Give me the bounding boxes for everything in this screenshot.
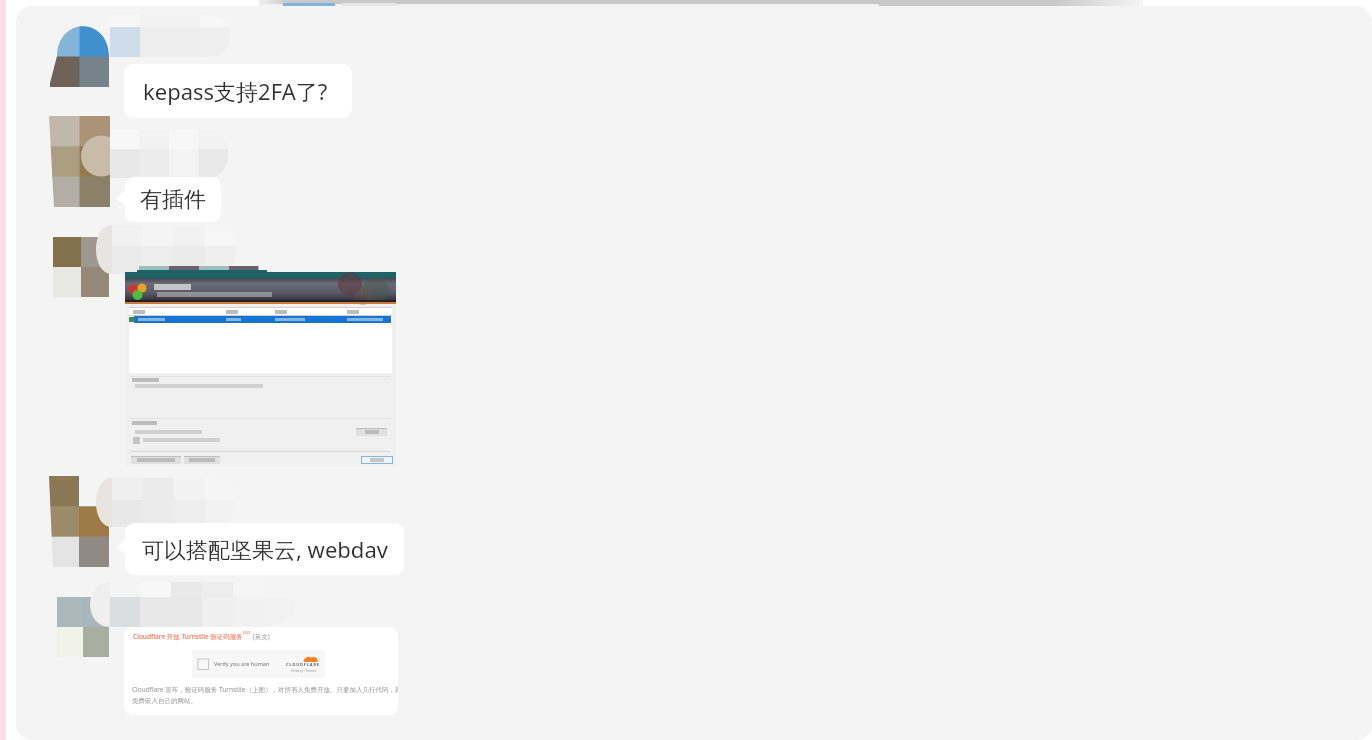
button[interactable]: 可以搭配坚果云, webdav [125,523,404,575]
staticText: 可以搭配坚果云, webdav [142,534,388,564]
staticText: Verify you are human [214,660,270,667]
staticText: kepass支持2FA了? [143,76,328,106]
staticText: Cloudflare 宣布，验证码服务 Turnstile（上图），对所有人免费… [132,685,398,705]
staticText: Privacy • Terms [291,668,316,673]
staticText: Cloudflare 开放 Turnstile 验证码服务 [133,632,243,641]
staticText: (英文) [251,632,270,641]
button[interactable]: Screenshot of KeePass plugin manager [125,272,396,467]
button[interactable]: 有插件 [125,177,221,222]
staticText: [32] [243,630,251,635]
staticText: 有插件 [140,186,206,214]
button[interactable]: Cloudflare 开放 Turnstile 验证码服务 [124,627,398,715]
staticText: CLOUDFLARE [286,662,320,667]
button[interactable]: kepass支持2FA了? [124,64,352,118]
